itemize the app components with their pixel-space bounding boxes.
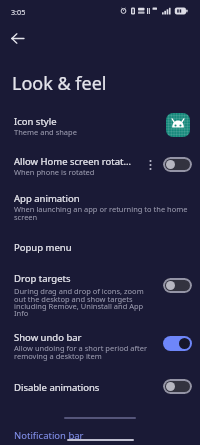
button[interactable]: Toggle off <box>163 157 192 172</box>
button[interactable] <box>0 425 200 445</box>
staticText: Drop targets <box>14 272 71 285</box>
button[interactable]: Toggle on <box>163 336 192 351</box>
button[interactable] <box>0 186 200 226</box>
button[interactable] <box>0 108 200 142</box>
staticText: Notification bar <box>14 429 84 442</box>
staticText: Show undo bar <box>14 331 82 344</box>
button[interactable]: Back <box>6 27 29 50</box>
staticText: Theme and shape <box>14 127 77 137</box>
staticText: Disable animations <box>14 381 100 394</box>
staticText: Look & feel <box>12 71 107 96</box>
button[interactable] <box>0 148 200 182</box>
button[interactable]: More options <box>143 157 157 173</box>
staticText: 3:05 <box>11 7 26 17</box>
staticText: Allow undoing for a short period after r… <box>14 343 152 361</box>
staticText: Allow Home screen rotation <box>14 155 132 168</box>
button[interactable]: Icon style preview <box>166 113 190 137</box>
staticText: When launching an app or returning to th… <box>14 204 189 222</box>
staticText: During drag and drop of icons, zoom out … <box>14 286 152 318</box>
staticText: App animation <box>14 192 80 205</box>
button[interactable] <box>0 375 200 403</box>
staticText: Popup menu <box>14 241 72 254</box>
staticText: Icon style <box>14 115 57 128</box>
button[interactable]: Toggle off <box>163 278 192 293</box>
button[interactable] <box>0 325 200 367</box>
button[interactable]: Toggle off <box>163 379 192 394</box>
staticText: When phone is rotated <box>14 167 95 177</box>
button[interactable] <box>0 265 200 320</box>
